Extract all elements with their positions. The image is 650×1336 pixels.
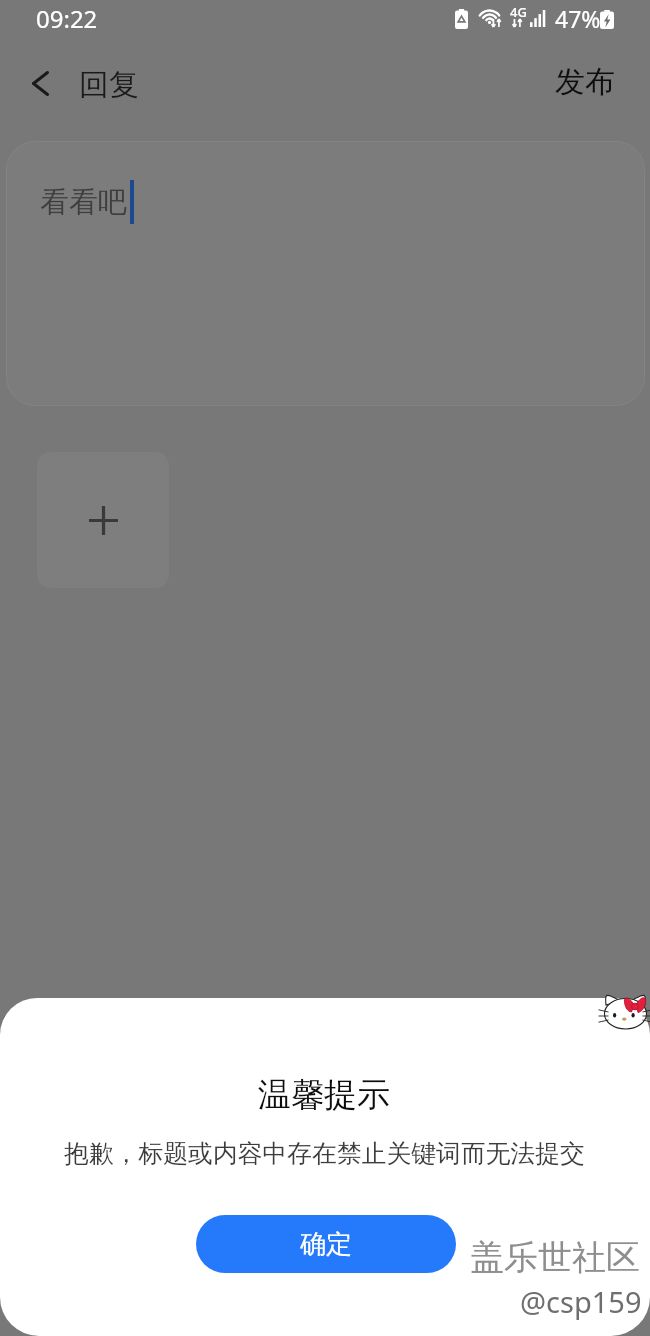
button[interactable]: Back	[16, 66, 64, 100]
button[interactable]: 看看吧	[6, 141, 645, 406]
staticText: 发布	[555, 63, 615, 101]
staticText: 09:22	[36, 2, 98, 35]
staticText: 盖乐世社区	[470, 1236, 640, 1279]
staticText: 4G	[510, 3, 527, 21]
staticText: 抱歉，标题或内容中存在禁止关键词而无法提交	[64, 1138, 585, 1169]
staticText: 看看吧	[40, 184, 127, 221]
staticText: 温馨提示	[258, 1074, 390, 1116]
button[interactable]: Add image	[37, 452, 169, 588]
staticText: 47%	[555, 3, 601, 34]
staticText: 确定	[300, 1228, 352, 1261]
button[interactable]: 确定	[196, 1215, 456, 1273]
staticText: 回复	[79, 66, 139, 104]
button[interactable]: 发布	[545, 57, 625, 107]
staticText: @csp159	[520, 1282, 642, 1321]
